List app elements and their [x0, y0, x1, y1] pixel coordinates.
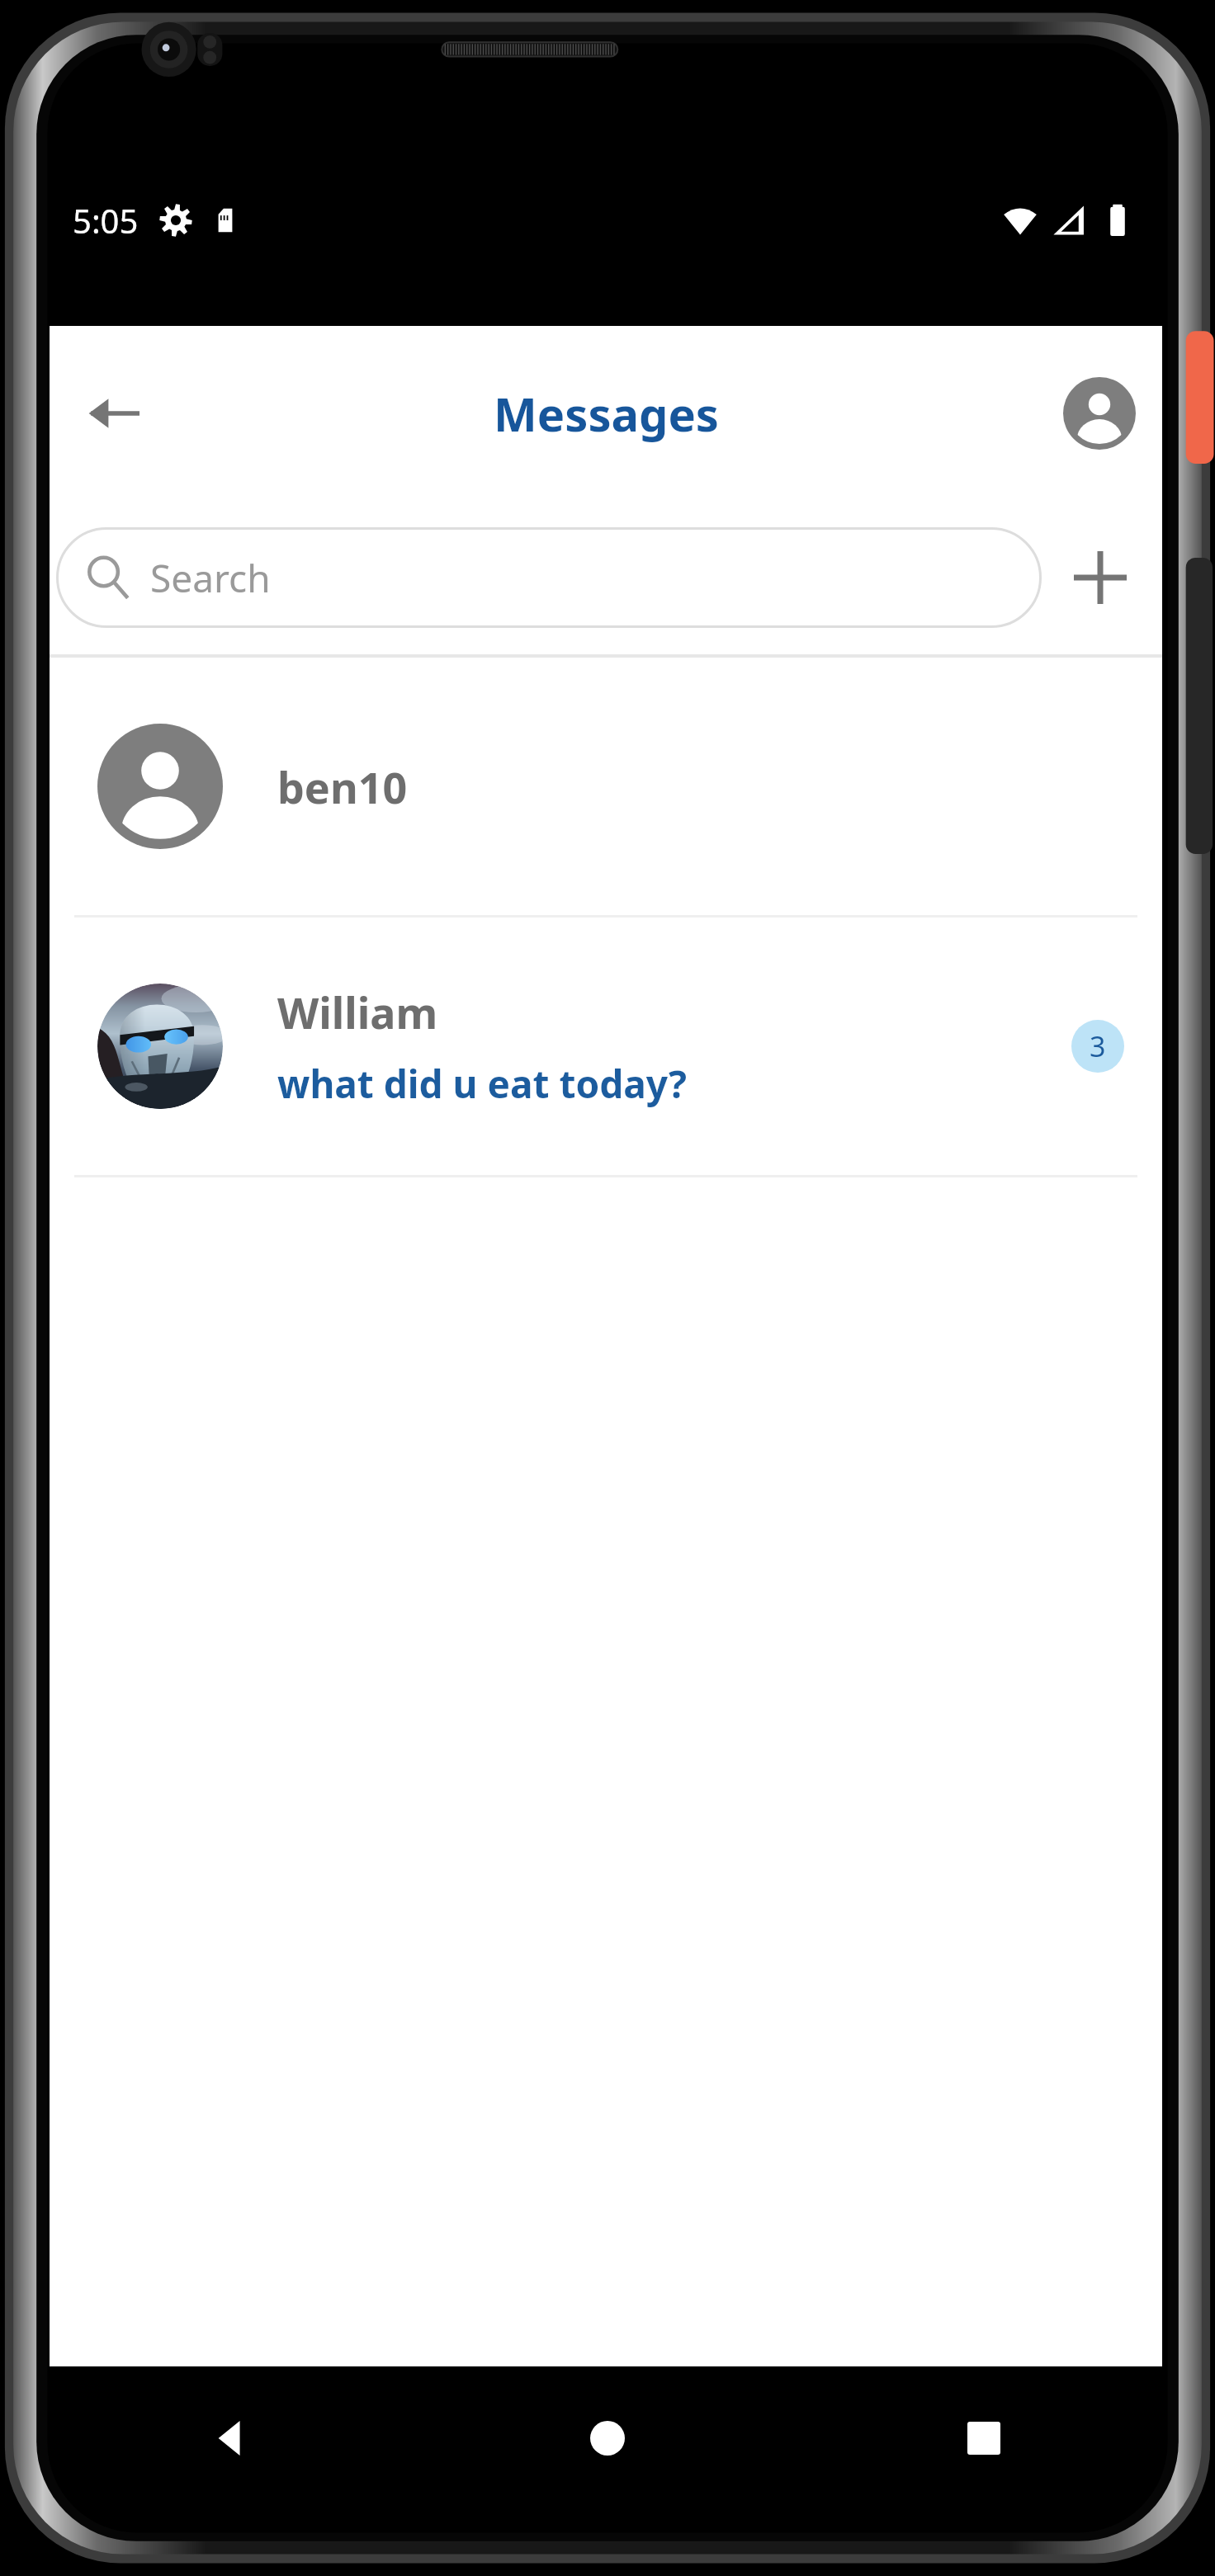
button[interactable]: ben10	[50, 658, 1162, 915]
staticText: ben10	[277, 757, 408, 816]
button[interactable]: Recent apps	[943, 2397, 1025, 2479]
staticText: William	[277, 983, 438, 1041]
staticText: what did u eat today?	[277, 1058, 687, 1110]
staticText: Messages	[494, 382, 719, 445]
button[interactable]: Home	[566, 2397, 649, 2479]
staticText: 5:05	[73, 198, 139, 243]
button[interactable]: William	[50, 918, 1162, 1175]
button[interactable]: Profile	[1058, 372, 1141, 455]
button[interactable]: Back	[68, 367, 160, 460]
staticText: 3	[1090, 1027, 1106, 1065]
button[interactable]: New conversation	[1055, 532, 1146, 623]
staticText: Search	[150, 552, 271, 604]
button[interactable]: Search	[56, 527, 1042, 628]
button[interactable]: Back	[190, 2397, 272, 2479]
